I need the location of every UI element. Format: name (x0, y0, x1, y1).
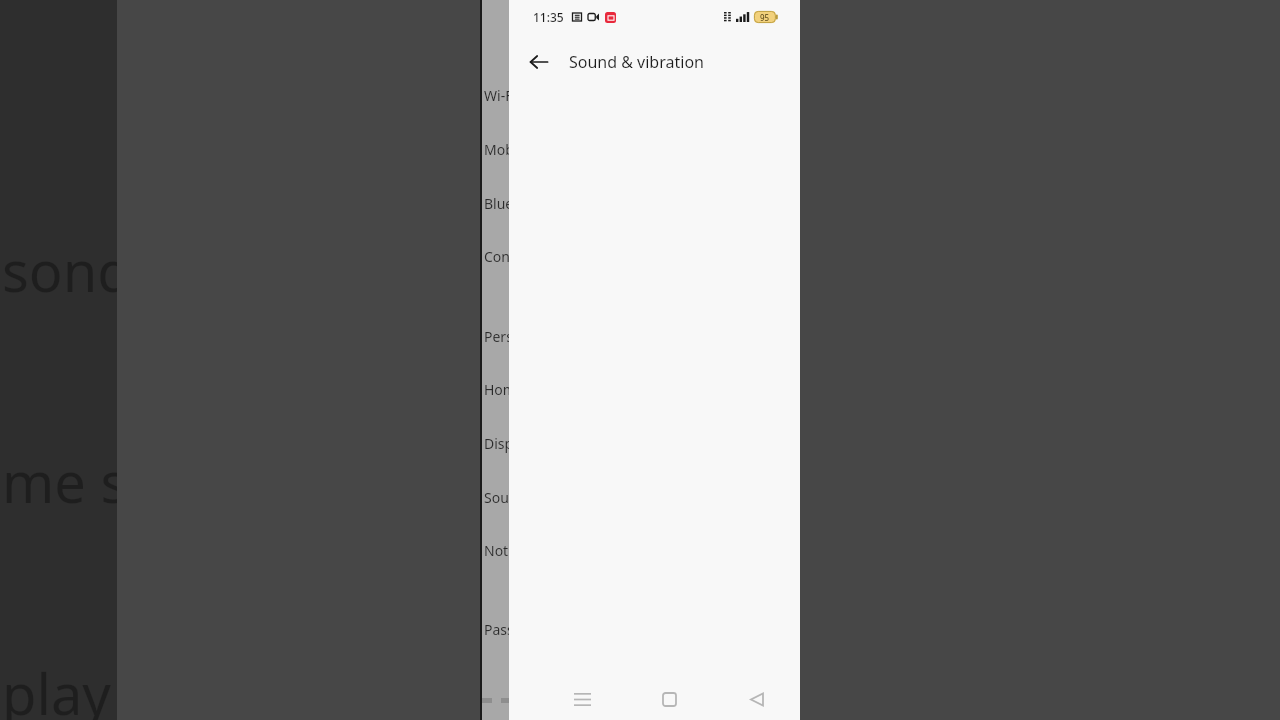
staticText: Bluetooth (484, 194, 549, 213)
staticText: Sound & vibration (569, 51, 704, 73)
button[interactable]: Home (626, 678, 713, 720)
button[interactable]: Display (480, 433, 800, 453)
staticText: Passwords & accounts (484, 620, 631, 639)
staticText: 11:35 (533, 9, 564, 25)
staticText: Sound & vibration (484, 488, 603, 507)
staticText: Display (484, 434, 532, 453)
button[interactable]: Home screen (480, 379, 800, 399)
button[interactable]: Mobile network (480, 139, 800, 159)
button[interactable]: Notifications (480, 540, 800, 560)
button[interactable]: Wi-Fi (480, 85, 800, 105)
staticText: Mobile network (484, 140, 587, 159)
button[interactable]: Connections (480, 246, 800, 266)
button[interactable]: Back (519, 42, 559, 82)
staticText: Notifications (484, 541, 568, 560)
staticText: Connections (484, 247, 566, 266)
staticText: Personalisation (484, 327, 586, 346)
button[interactable]: Back (713, 678, 800, 720)
staticText: 95 (760, 12, 770, 23)
button[interactable]: Recent apps (538, 678, 626, 720)
staticText: me s (2, 443, 117, 519)
button[interactable]: Bluetooth (480, 193, 800, 213)
staticText: Wi-Fi (484, 86, 517, 105)
staticText: play (2, 655, 111, 720)
button[interactable]: Sound & vibration (480, 487, 800, 507)
staticText: Home screen (484, 380, 571, 399)
staticText: sond (2, 232, 117, 308)
button[interactable]: Passwords & accounts (480, 619, 800, 639)
button[interactable]: Personalisation (480, 326, 800, 346)
